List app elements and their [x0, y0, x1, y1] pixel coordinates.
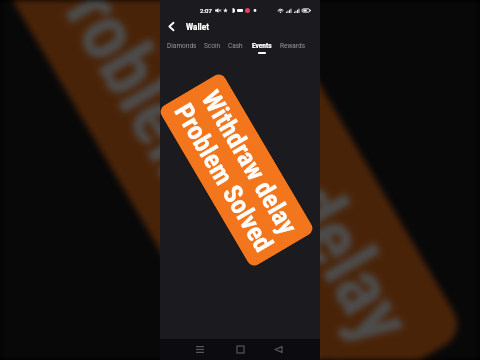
button[interactable]: Scoin: [200, 40, 224, 56]
staticText: Withdraw delay Problem Solved: [167, 82, 306, 258]
button[interactable]: Withdraw delay Problem Solved: [0, 0, 466, 360]
button[interactable]: Cash: [224, 40, 247, 56]
staticText: Diamonds: [167, 42, 197, 50]
staticText: Cash: [228, 42, 243, 50]
button[interactable]: Back: [161, 18, 181, 35]
button[interactable]: Back: [266, 339, 290, 360]
staticText: Events: [252, 42, 272, 50]
button[interactable]: Home: [228, 339, 252, 360]
button[interactable]: Events: [248, 40, 275, 56]
button[interactable]: Diamonds: [163, 40, 200, 56]
button[interactable]: Rewards: [276, 40, 309, 56]
button[interactable]: Withdraw delay Problem Solved: [160, 71, 315, 268]
staticText: Rewards: [280, 42, 306, 50]
staticText: 2:07: [200, 7, 212, 14]
staticText: Withdraw delay Problem Solved: [22, 0, 437, 360]
staticText: Wallet: [186, 22, 209, 32]
staticText: Scoin: [204, 42, 221, 50]
button[interactable]: Recent apps: [188, 339, 212, 360]
